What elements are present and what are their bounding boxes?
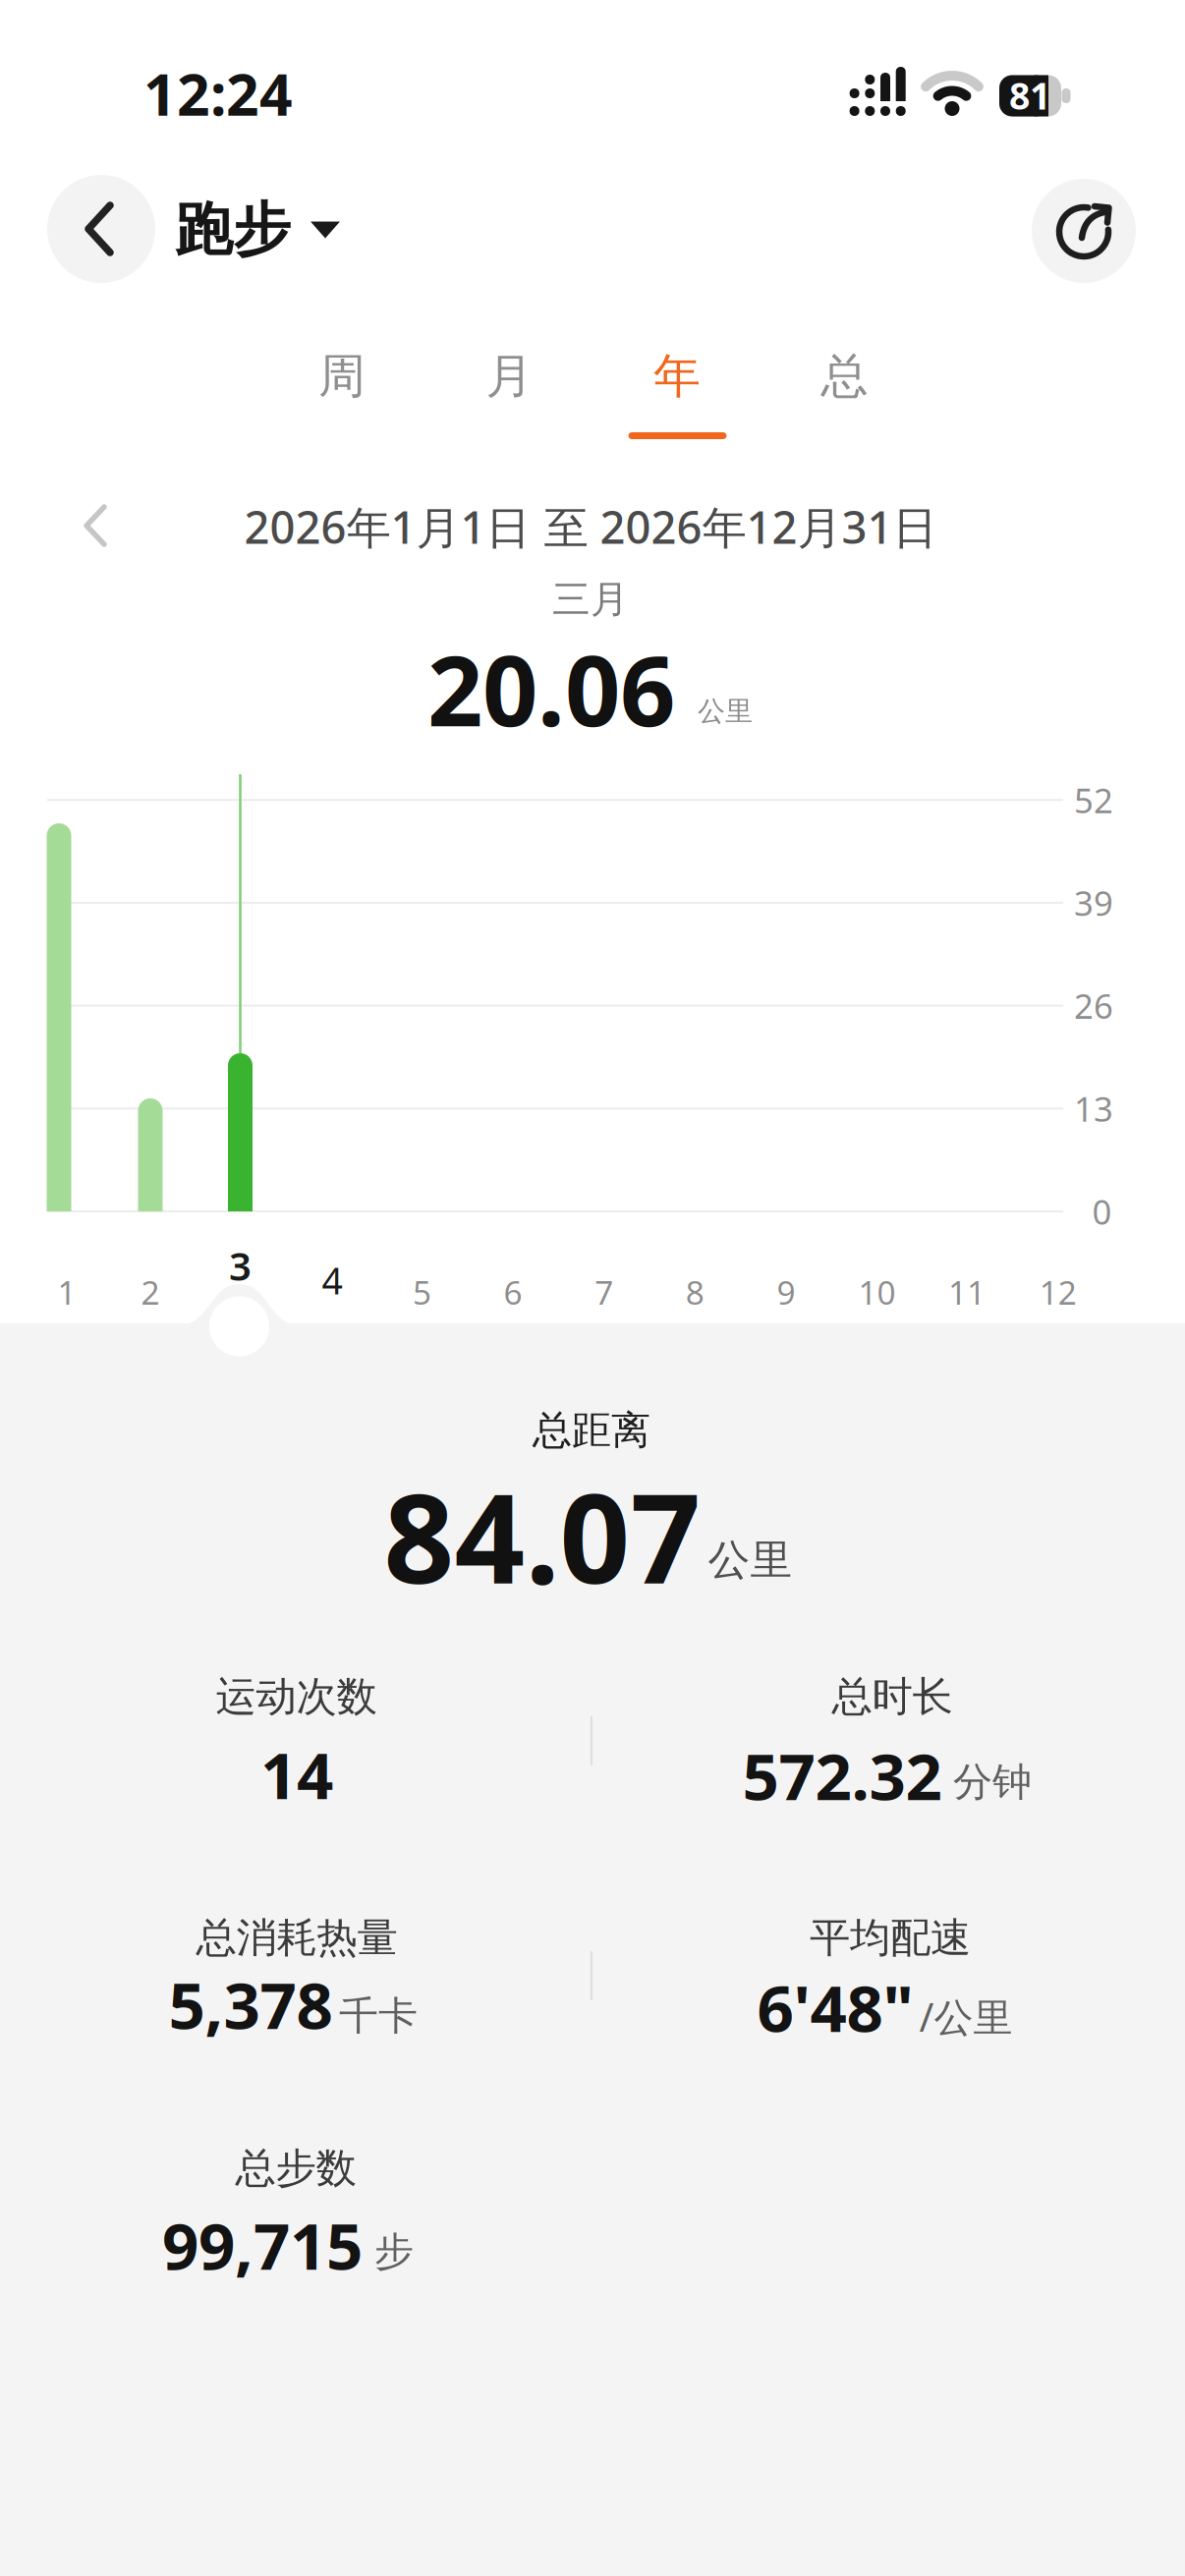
- staticText: 5: [413, 1270, 431, 1314]
- staticText: 平均配速: [810, 1913, 971, 1963]
- staticText: 4: [322, 1256, 342, 1305]
- staticText: 步: [374, 2228, 414, 2276]
- button[interactable]: 月 11: [948, 1270, 986, 1314]
- button[interactable]: 月 9: [777, 1270, 795, 1314]
- staticText: 8: [686, 1270, 704, 1314]
- staticText: 6'48": [757, 1965, 913, 2050]
- staticText: /公里: [919, 1990, 1013, 2043]
- button[interactable]: 月 2: [141, 1270, 160, 1314]
- staticText: 运动次数: [216, 1672, 377, 1722]
- button[interactable]: 月: [486, 347, 533, 405]
- staticText: 年: [653, 347, 701, 405]
- button[interactable]: 总: [821, 347, 868, 405]
- button[interactable]: 月 1: [57, 1270, 76, 1314]
- button[interactable]: 月 5: [413, 1270, 431, 1314]
- button[interactable]: Previous: [79, 499, 118, 552]
- button[interactable]: Back: [47, 175, 155, 283]
- button[interactable]: 年: [653, 347, 701, 405]
- staticText: 月: [486, 347, 533, 405]
- staticText: 14: [260, 1732, 333, 1817]
- button[interactable]: 月 8: [686, 1270, 704, 1314]
- staticText: 11: [948, 1270, 986, 1314]
- staticText: 跑步: [175, 195, 291, 265]
- staticText: 6: [504, 1270, 522, 1314]
- staticText: 84.07: [384, 1454, 701, 1617]
- staticText: 周: [318, 347, 366, 405]
- button[interactable]: 月 12: [1039, 1270, 1077, 1314]
- staticText: 12:24: [143, 55, 293, 132]
- staticText: 572.32: [742, 1733, 942, 1818]
- staticText: 81: [1009, 71, 1050, 120]
- staticText: 12: [1039, 1270, 1077, 1314]
- staticText: 7: [595, 1270, 613, 1314]
- button[interactable]: 月 3: [229, 1239, 252, 1291]
- staticText: 1: [57, 1270, 76, 1314]
- staticText: 26: [1074, 983, 1113, 1028]
- staticText: 总: [821, 347, 868, 405]
- staticText: 3: [229, 1239, 252, 1291]
- button[interactable]: 跑步: [175, 195, 340, 265]
- staticText: 52: [1074, 777, 1113, 823]
- staticText: 分钟: [953, 1758, 1032, 1806]
- button[interactable]: 月 4: [322, 1256, 342, 1305]
- staticText: 三月: [552, 576, 629, 623]
- staticText: 总消耗热量: [196, 1913, 397, 1963]
- staticText: 10: [858, 1270, 896, 1314]
- button[interactable]: 月 7: [595, 1270, 613, 1314]
- staticText: 5,378: [169, 1962, 333, 2047]
- button[interactable]: Share: [1032, 179, 1136, 283]
- staticText: 千卡: [339, 1992, 418, 2040]
- staticText: 总距离: [533, 1406, 650, 1455]
- staticText: 39: [1074, 880, 1113, 925]
- staticText: 2026年1月1日 至 2026年12月31日: [244, 497, 937, 556]
- staticText: 13: [1074, 1086, 1113, 1131]
- staticText: 9: [777, 1270, 795, 1314]
- staticText: 2: [141, 1270, 160, 1314]
- button[interactable]: 月 10: [858, 1270, 896, 1314]
- staticText: 0: [1092, 1189, 1112, 1234]
- staticText: 公里: [698, 694, 753, 728]
- button[interactable]: 月 6: [504, 1270, 522, 1314]
- staticText: 99,715: [162, 2202, 363, 2288]
- staticText: 公里: [708, 1534, 792, 1586]
- staticText: 总时长: [832, 1672, 953, 1722]
- staticText: 总步数: [235, 2143, 356, 2193]
- staticText: 20.06: [427, 624, 675, 753]
- button[interactable]: 周: [318, 347, 366, 405]
